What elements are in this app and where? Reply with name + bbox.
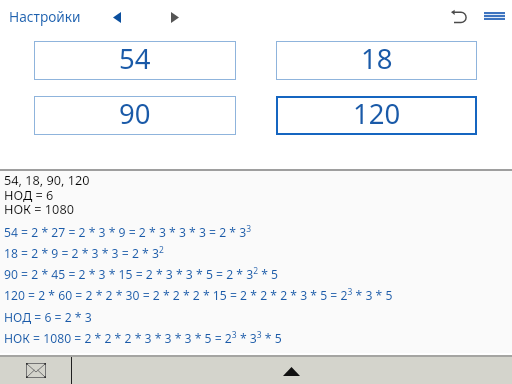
button[interactable]: 120 <box>276 96 477 135</box>
staticText: НОК = 1080 <box>4 200 74 217</box>
button[interactable]: Настройки <box>9 7 81 26</box>
staticText: 120 <box>353 95 401 132</box>
button[interactable]: 18 <box>276 41 477 80</box>
button[interactable]: Collapse <box>72 357 512 384</box>
staticText: 54, 18, 90, 120 <box>4 171 90 188</box>
button[interactable]: Next <box>161 3 189 31</box>
staticText: НОД = 6 <box>4 186 54 203</box>
button[interactable]: НОК = 1080 = 2 * 2 * 2 * 3 * 3 * 3 * 5 =… <box>4 329 282 346</box>
button[interactable]: 18 = 2 * 9 = 2 * 3 * 3 = 2 * 32 <box>4 244 164 261</box>
staticText: 18 <box>361 40 393 77</box>
button[interactable]: 54 <box>34 41 236 80</box>
button[interactable]: 90 <box>34 96 236 135</box>
button[interactable]: Mail <box>0 357 71 384</box>
button[interactable]: Previous <box>103 3 131 31</box>
button[interactable]: НОД = 6 = 2 * 3 <box>4 309 92 326</box>
button[interactable]: Undo <box>443 2 471 30</box>
button[interactable]: 54 = 2 * 27 = 2 * 3 * 9 = 2 * 3 * 3 * 3 … <box>4 223 252 240</box>
button[interactable]: 120 = 2 * 60 = 2 * 2 * 30 = 2 * 2 * 2 * … <box>4 286 393 303</box>
button[interactable]: Menu <box>480 2 508 30</box>
staticText: 54 <box>119 40 151 77</box>
staticText: 90 <box>119 95 151 132</box>
button[interactable]: 90 = 2 * 45 = 2 * 3 * 15 = 2 * 3 * 3 * 5… <box>4 265 279 282</box>
